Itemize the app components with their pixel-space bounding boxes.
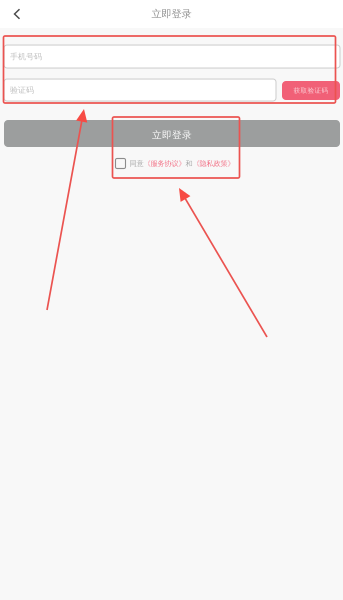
staticText: 同意: [129, 159, 143, 168]
button[interactable]: Agree to terms: [115, 158, 125, 168]
button[interactable]: 获取验证码: [282, 81, 340, 100]
staticText: 立即登录: [152, 129, 192, 141]
button[interactable]: 《隐私政策》: [192, 159, 234, 168]
staticText: 立即登录: [151, 8, 191, 20]
staticText: 《服务协议》: [143, 159, 185, 168]
staticText: 和: [185, 159, 192, 168]
button[interactable]: 《服务协议》: [143, 159, 185, 168]
staticText: 手机号码: [10, 51, 42, 62]
staticText: 《隐私政策》: [192, 159, 234, 168]
staticText: 验证码: [10, 85, 34, 95]
button[interactable]: 立即登录: [4, 120, 340, 147]
staticText: 获取验证码: [293, 86, 328, 95]
button[interactable]: Back: [0, 0, 34, 28]
